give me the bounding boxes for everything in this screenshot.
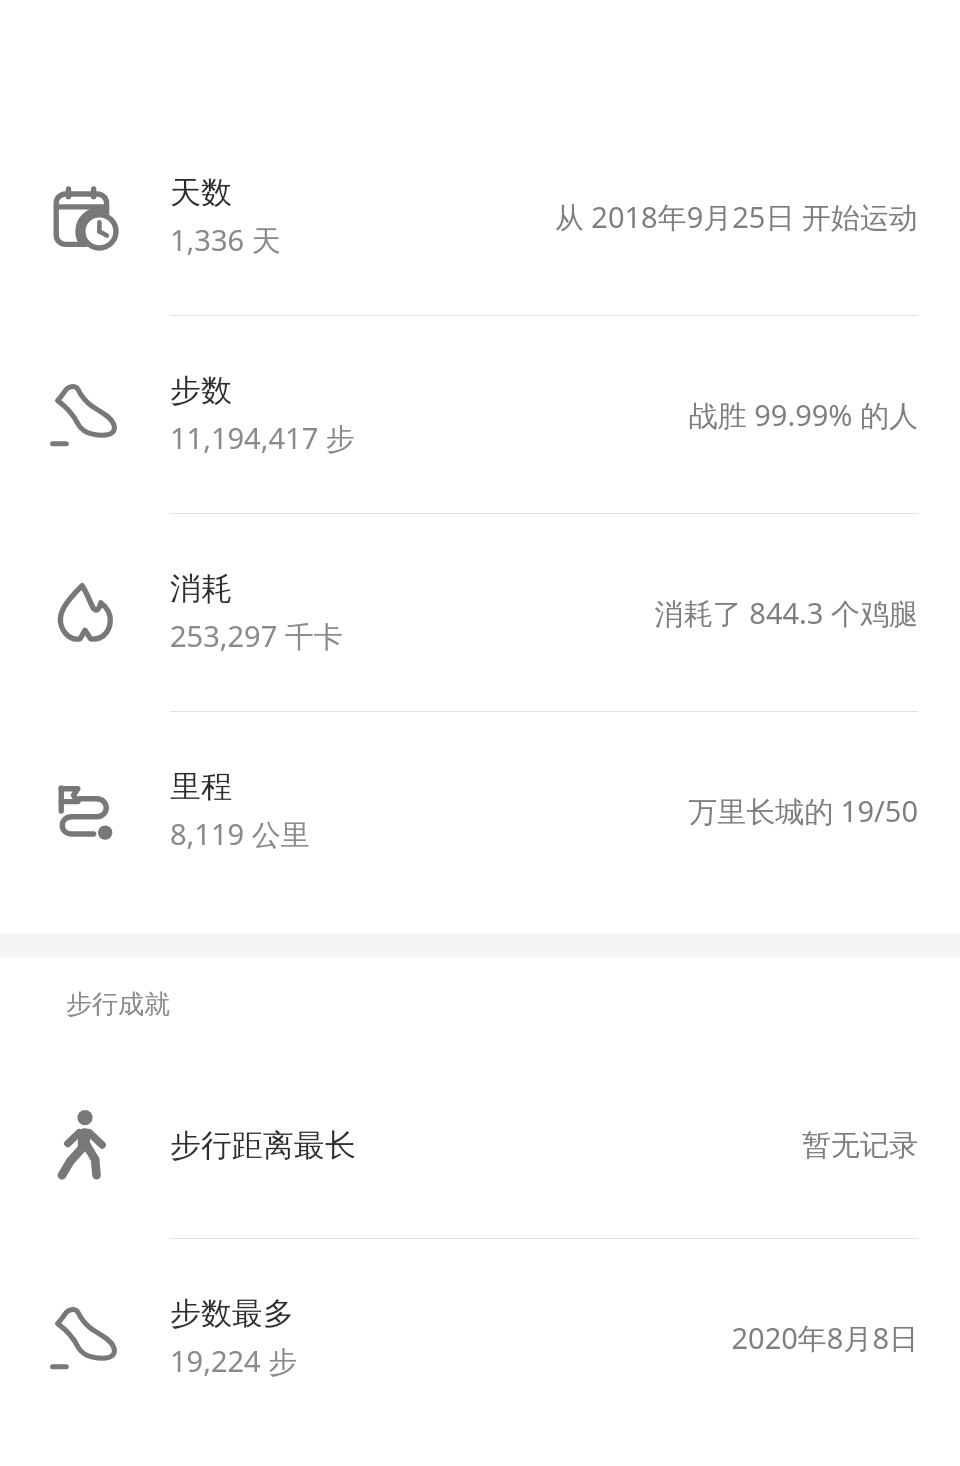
button[interactable]: Longest walking distance [0,1052,960,1238]
staticText: 消耗了 844.3 个鸡腿 [654,593,918,633]
staticText: 从 2018年9月25日 开始运动 [554,197,918,237]
button[interactable]: Days [0,118,960,315]
button[interactable]: Most steps [0,1239,960,1436]
staticText: 天数 [170,173,232,212]
other: Most steps [49,1302,121,1374]
button[interactable]: Steps [0,316,960,513]
staticText: 19,224 步 [170,1341,298,1381]
staticText: 2020年8月8日 [731,1318,918,1358]
staticText: 1,336 天 [170,220,281,260]
other: Calories [49,577,121,649]
staticText: 步数最多 [170,1294,294,1333]
staticText: 8,119 公里 [170,814,310,854]
staticText: 步行成就 [66,988,170,1021]
button[interactable]: Distance [0,712,960,909]
staticText: 里程 [170,767,232,806]
staticText: 步行距离最长 [170,1126,356,1165]
staticText: 消耗 [170,569,232,608]
other: Steps [49,379,121,451]
staticText: 暂无记录 [802,1127,918,1164]
staticText: 万里长城的 19/50 [688,791,918,831]
other: Longest walking distance [49,1109,121,1181]
other: Days [49,181,121,253]
staticText: 步数 [170,371,232,410]
staticText: 11,194,417 步 [170,418,355,458]
staticText: 战胜 99.99% 的人 [688,395,918,435]
button[interactable]: Calories [0,514,960,711]
other: Distance [49,775,121,847]
staticText: 253,297 千卡 [170,616,343,656]
